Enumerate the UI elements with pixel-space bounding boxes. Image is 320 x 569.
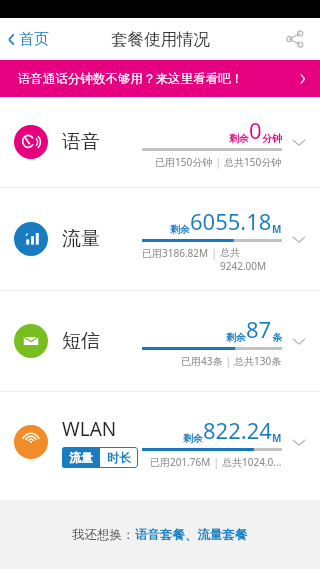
staticText: 已用43条 — [181, 354, 223, 368]
button[interactable]: 短信 — [0, 291, 320, 391]
staticText: 已用150分钟 — [155, 155, 213, 169]
staticText: 已用201.76M — [150, 455, 211, 469]
button[interactable]: Expand — [286, 226, 312, 252]
staticText: M — [272, 222, 282, 236]
staticText: 87 — [246, 314, 272, 344]
staticText: WLAN — [62, 416, 117, 442]
staticText: M — [272, 431, 282, 445]
staticText: 套餐使用情况 — [111, 29, 210, 50]
staticText: 剩余 — [183, 432, 203, 445]
button[interactable]: Share — [278, 22, 312, 56]
staticText: 时长 — [107, 450, 131, 465]
staticText: 语音通话分钟数不够用？来这里看看吧！ — [18, 71, 299, 87]
button[interactable]: 语音 — [0, 97, 320, 187]
staticText: 总共130条 — [234, 354, 282, 368]
button[interactable]: 流量 — [62, 447, 100, 468]
staticText: 总共9242.00M — [220, 246, 282, 273]
staticText: 已用3186.82M — [142, 246, 209, 260]
button[interactable]: Expand — [286, 328, 312, 354]
staticText: | — [209, 246, 220, 260]
staticText: 6055.18 — [190, 206, 272, 236]
staticText: 剩余 — [170, 223, 190, 236]
staticText: 语音套餐、流量套餐 — [135, 527, 248, 543]
staticText: 语音 — [62, 130, 100, 154]
staticText: | — [213, 155, 224, 169]
staticText: | — [211, 455, 222, 469]
staticText: | — [223, 354, 234, 368]
staticText: 条 — [272, 331, 282, 344]
staticText: 分钟 — [262, 132, 282, 145]
button[interactable]: 首页 — [0, 24, 61, 55]
button[interactable]: 我还想换： — [72, 527, 248, 543]
staticText: 0 — [249, 115, 262, 145]
staticText: 流量 — [69, 450, 93, 465]
staticText: 剩余 — [229, 132, 249, 145]
staticText: 总共150分钟 — [224, 155, 282, 169]
button[interactable]: 语音通话分钟数不够用？来这里看看吧！ — [0, 60, 320, 97]
button[interactable]: WLAN — [0, 392, 320, 492]
staticText: 短信 — [62, 329, 100, 353]
button[interactable]: Expand — [286, 429, 312, 455]
button[interactable]: 时长 — [100, 447, 138, 468]
staticText: 我还想换： — [72, 527, 135, 543]
button[interactable]: Expand — [286, 129, 312, 155]
staticText: 822.24 — [203, 415, 272, 445]
staticText: 流量 — [62, 227, 100, 251]
staticText: 首页 — [19, 30, 49, 49]
staticText: 剩余 — [226, 331, 246, 344]
button[interactable]: 流量 — [0, 188, 320, 290]
staticText: 总共1024.0... — [222, 455, 282, 469]
